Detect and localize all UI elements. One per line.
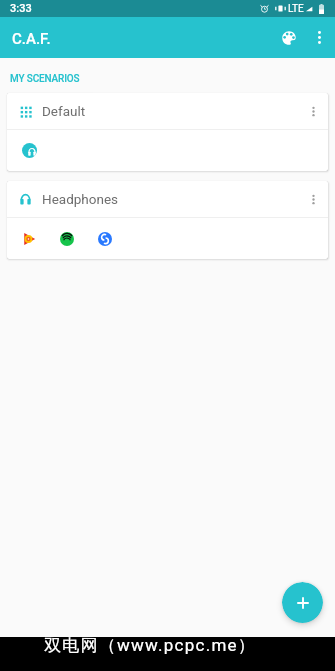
staticText: Headphones (42, 191, 119, 207)
staticText: Default (42, 103, 86, 119)
staticText: 3:33 (10, 2, 32, 15)
staticText: C.A.F. (12, 30, 51, 48)
button[interactable]: Play Music (22, 232, 36, 246)
button[interactable]: Headphones (7, 181, 328, 259)
button[interactable]: Theme (273, 17, 304, 58)
button[interactable]: Spotify (60, 232, 74, 246)
button[interactable]: Shazam (98, 232, 112, 246)
staticText: LTE (288, 3, 304, 15)
staticText: MY SCENARIOS (10, 73, 80, 85)
button[interactable]: Add scenario (282, 582, 323, 623)
button[interactable]: Scenario options (298, 181, 328, 217)
button[interactable]: Default (7, 93, 328, 171)
staticText: 双电网（www.pcpc.me） (44, 635, 257, 656)
button[interactable]: Scenario options (298, 93, 328, 129)
button[interactable]: Headphones app (22, 143, 37, 158)
button[interactable]: More options (304, 17, 335, 58)
